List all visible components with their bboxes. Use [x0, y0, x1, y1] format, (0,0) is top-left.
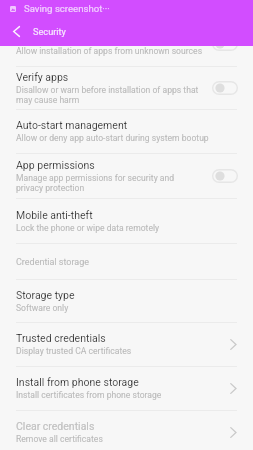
- button[interactable]: App permissions: [0, 153, 253, 198]
- staticText: Clear credentials: [16, 420, 95, 432]
- staticText: Auto-start management: [16, 119, 128, 131]
- staticText: Software only: [16, 303, 69, 313]
- staticText: Verify apps: [16, 71, 69, 83]
- staticText: App permissions: [16, 159, 95, 171]
- staticText: Trusted credentials: [16, 332, 106, 344]
- staticText: Saving screenshot···: [24, 3, 110, 14]
- button[interactable]: Mobile anti-theft: [0, 198, 253, 243]
- staticText: Allow installation of apps from unknown …: [16, 46, 203, 56]
- staticText: Storage type: [16, 289, 75, 301]
- staticText: Remove all certificates: [16, 434, 103, 444]
- button[interactable]: Storage type: [0, 279, 253, 323]
- staticText: Disallow or warn before installation of …: [16, 85, 199, 105]
- staticText: Lock the phone or wipe data remotely: [16, 223, 160, 233]
- staticText: Credential storage: [16, 257, 90, 268]
- staticText: Manage app permissions for security and …: [16, 173, 175, 193]
- staticText: Security: [33, 26, 66, 37]
- staticText: Install from phone storage: [16, 376, 139, 388]
- staticText: Mobile anti-theft: [16, 209, 93, 221]
- button[interactable]: Unknown sources: [0, 22, 253, 66]
- button[interactable]: Install from phone storage: [0, 366, 253, 410]
- button[interactable]: Verify apps: [0, 66, 253, 110]
- staticText: Display trusted CA certificates: [16, 346, 132, 356]
- button[interactable]: Auto-start management: [0, 109, 253, 153]
- staticText: Install certificates from phone storage: [16, 390, 162, 400]
- staticText: Unknown sources: [16, 32, 100, 44]
- button[interactable]: Clear credentials: [0, 410, 253, 450]
- button[interactable]: Trusted credentials: [0, 322, 253, 366]
- button[interactable]: Back: [0, 17, 33, 46]
- staticText: Allow or deny app auto-start during syst…: [16, 133, 209, 143]
